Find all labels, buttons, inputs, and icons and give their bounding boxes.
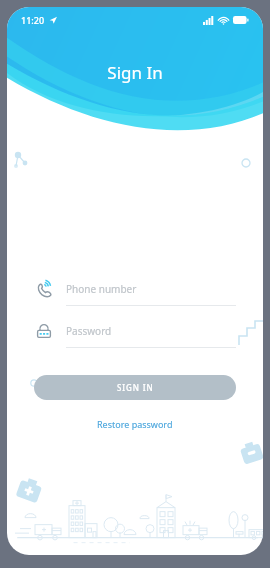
button[interactable]: Password <box>34 321 236 348</box>
staticText: 11:20 <box>21 14 45 26</box>
button[interactable]: Restore password <box>91 415 179 433</box>
staticText: SIGN IN <box>117 382 154 393</box>
staticText: Restore password <box>97 418 173 430</box>
staticText: Phone number <box>66 282 137 296</box>
button[interactable]: SIGN IN <box>34 375 236 400</box>
staticText: Password <box>66 324 112 338</box>
staticText: Sign In <box>107 61 163 84</box>
button[interactable]: Phone number <box>34 279 236 306</box>
